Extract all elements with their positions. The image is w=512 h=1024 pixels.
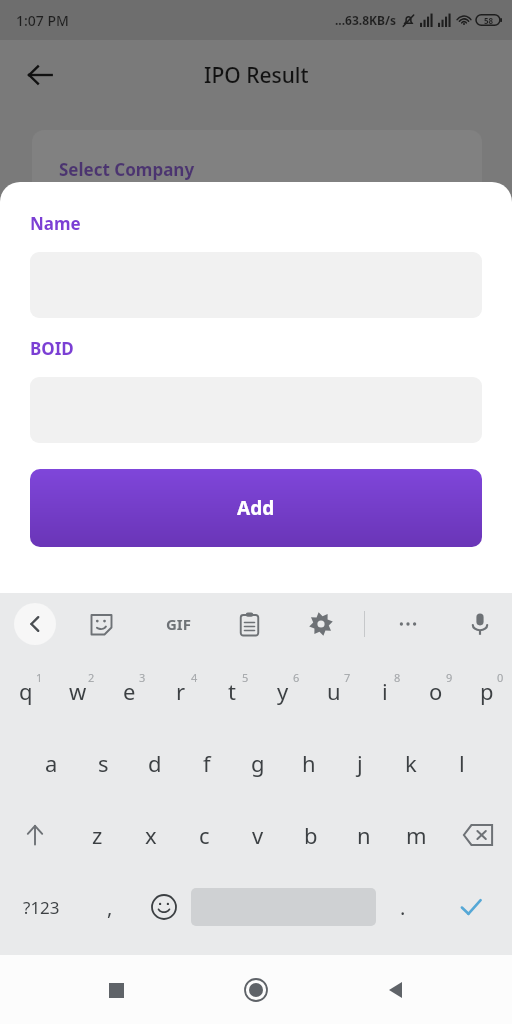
button[interactable]: j <box>334 727 385 799</box>
staticText: ?123 <box>23 896 60 919</box>
button[interactable]: c <box>178 799 231 871</box>
button[interactable]: q <box>0 655 52 727</box>
button[interactable]: GIF <box>158 604 198 644</box>
button[interactable]: g <box>232 727 283 799</box>
staticText: h <box>302 748 316 778</box>
staticText: IPO Result <box>204 61 309 90</box>
staticText: d <box>148 748 162 778</box>
button[interactable]: a <box>25 727 77 799</box>
button[interactable]: v <box>231 799 284 871</box>
staticText: a <box>45 748 58 778</box>
staticText: n <box>357 820 371 850</box>
staticText: y <box>277 676 289 706</box>
button[interactable]: m <box>390 799 443 871</box>
button[interactable]: y <box>257 655 308 727</box>
button[interactable]: Settings <box>304 607 338 641</box>
button[interactable]: o <box>410 655 461 727</box>
staticText: 9 <box>446 670 453 685</box>
staticText: l <box>459 748 465 778</box>
button[interactable]: Recents <box>92 966 140 1014</box>
button[interactable]: n <box>337 799 390 871</box>
staticText: GIF <box>166 614 191 634</box>
staticText: f <box>203 748 211 778</box>
button[interactable]: Back <box>14 603 56 645</box>
button[interactable]: e <box>104 655 155 727</box>
button[interactable]: d <box>129 727 181 799</box>
staticText: 58 <box>484 15 494 26</box>
button[interactable]: f <box>181 727 232 799</box>
button[interactable]: s <box>77 727 129 799</box>
button[interactable]: Add <box>30 469 482 547</box>
staticText: u <box>327 676 341 706</box>
staticText: 8 <box>394 670 401 685</box>
staticText: Add <box>237 495 275 521</box>
button[interactable]: Space <box>191 871 376 943</box>
staticText: 1:07 PM <box>16 11 69 30</box>
staticText: Name <box>30 212 81 235</box>
staticText: w <box>69 676 87 706</box>
staticText: g <box>251 748 265 778</box>
button[interactable]: Back <box>18 53 62 97</box>
staticText: o <box>429 676 443 706</box>
button[interactable]: h <box>283 727 334 799</box>
button[interactable]: p <box>461 655 512 727</box>
staticText: x <box>145 820 157 850</box>
staticText: . <box>400 894 406 921</box>
staticText: p <box>480 676 494 706</box>
button[interactable]: Stickers <box>84 607 118 641</box>
staticText: e <box>123 676 136 706</box>
button[interactable]: Home <box>232 966 280 1014</box>
button[interactable]: w <box>52 655 104 727</box>
button[interactable]: . <box>376 871 430 943</box>
staticText: BOID <box>30 337 74 360</box>
staticText: Select Company <box>59 158 195 181</box>
button[interactable]: t <box>206 655 257 727</box>
button[interactable]: k <box>385 727 436 799</box>
button[interactable]: Shift <box>0 799 70 871</box>
staticText: i <box>382 676 388 706</box>
staticText: q <box>19 676 33 706</box>
button[interactable]: , <box>83 871 137 943</box>
staticText: v <box>252 820 264 850</box>
button[interactable]: u <box>308 655 359 727</box>
staticText: 0 <box>497 670 504 685</box>
button[interactable]: Clipboard <box>232 607 266 641</box>
staticText: j <box>357 748 363 778</box>
button[interactable]: ?123 <box>0 871 83 943</box>
button[interactable]: Emoji <box>137 871 191 943</box>
staticText: 7 <box>344 670 351 685</box>
staticText: m <box>406 820 427 850</box>
staticText: 3 <box>139 670 146 685</box>
button[interactable]: x <box>124 799 178 871</box>
button[interactable]: r <box>155 655 206 727</box>
button[interactable]: Backspace <box>443 799 512 871</box>
button[interactable]: More options <box>391 607 425 641</box>
button[interactable]: Voice input <box>462 606 498 642</box>
button[interactable]: Enter <box>430 871 512 943</box>
staticText: 4 <box>191 670 198 685</box>
button[interactable]: Back <box>372 966 420 1014</box>
staticText: 2 <box>88 670 95 685</box>
staticText: b <box>304 820 318 850</box>
staticText: r <box>176 676 186 706</box>
staticText: k <box>405 748 417 778</box>
staticText: ...63.8KB/s <box>335 12 397 28</box>
staticText: 5 <box>242 670 249 685</box>
staticText: z <box>92 820 103 850</box>
button[interactable]: l <box>436 727 487 799</box>
button[interactable]: b <box>284 799 337 871</box>
staticText: c <box>199 820 210 850</box>
staticText: t <box>228 676 236 706</box>
staticText: 1 <box>36 670 43 685</box>
button[interactable]: i <box>359 655 410 727</box>
staticText: 6 <box>293 670 300 685</box>
button[interactable]: z <box>70 799 124 871</box>
staticText: s <box>98 748 109 778</box>
staticText: , <box>107 894 113 921</box>
